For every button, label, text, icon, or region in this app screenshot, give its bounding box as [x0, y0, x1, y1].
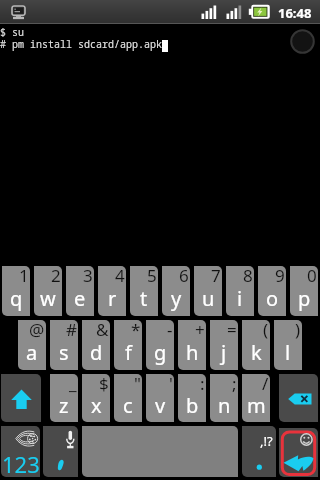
button[interactable]: )	[274, 320, 302, 370]
staticText: z	[59, 392, 69, 419]
button[interactable]: 8	[226, 266, 254, 316]
staticText: *	[131, 320, 141, 341]
staticText: +	[195, 320, 205, 341]
staticText: #	[66, 320, 77, 341]
staticText: u	[202, 285, 215, 312]
button[interactable]: -	[146, 320, 174, 370]
button[interactable]: '	[146, 374, 174, 422]
staticText: h	[186, 339, 199, 366]
button[interactable]: :	[178, 374, 206, 422]
staticText: y	[171, 285, 182, 312]
staticText: v	[155, 392, 166, 419]
button[interactable]: 6	[162, 266, 190, 316]
staticText: $ su	[0, 25, 24, 39]
staticText: m	[247, 392, 266, 419]
staticText: "	[134, 374, 141, 395]
staticText: ,!?	[260, 432, 273, 450]
staticText: -	[167, 320, 173, 341]
button[interactable]: 1	[2, 266, 30, 316]
button[interactable]: +	[178, 320, 206, 370]
staticText: /	[262, 374, 269, 395]
staticText: l	[285, 339, 291, 366]
staticText: k	[251, 339, 262, 366]
staticText: 4	[115, 266, 125, 287]
staticText: :	[200, 374, 205, 395]
staticText: # pm install sdcard/app.apk	[0, 37, 162, 51]
staticText: s	[59, 339, 69, 366]
staticText: a	[26, 339, 38, 366]
button[interactable]: Voice input	[43, 426, 78, 477]
button[interactable]: Space	[82, 426, 238, 477]
staticText: 2	[51, 266, 61, 287]
button[interactable]: =	[210, 320, 238, 370]
staticText: 7	[211, 266, 221, 287]
staticText: c	[123, 392, 133, 419]
staticText: x	[91, 392, 102, 419]
staticText: 6	[179, 266, 189, 287]
button[interactable]: "	[114, 374, 142, 422]
button[interactable]: Backspace	[279, 374, 318, 422]
staticText: o	[266, 285, 279, 312]
button[interactable]: /	[242, 374, 270, 422]
staticText: b	[186, 392, 199, 419]
button[interactable]: Punctuation	[242, 426, 276, 477]
button[interactable]: #	[50, 320, 78, 370]
staticText: r	[108, 285, 117, 312]
staticText: p	[298, 285, 311, 312]
staticText: @	[29, 320, 45, 341]
staticText: n	[218, 392, 231, 419]
button[interactable]: @	[18, 320, 46, 370]
staticText: t	[140, 285, 148, 312]
button[interactable]: *	[114, 320, 142, 370]
staticText: )	[295, 320, 301, 341]
staticText: $	[99, 374, 109, 395]
staticText: i	[237, 285, 243, 312]
staticText: '	[169, 374, 173, 395]
button[interactable]: &	[82, 320, 110, 370]
staticText: =	[227, 320, 237, 341]
staticText: j	[221, 339, 227, 366]
button[interactable]: Enter	[279, 428, 318, 477]
staticText: g	[154, 339, 167, 366]
button[interactable]: 5	[130, 266, 158, 316]
button[interactable]: (	[242, 320, 270, 370]
staticText: _	[69, 374, 77, 395]
staticText: 3	[83, 266, 93, 287]
staticText: w	[40, 285, 56, 312]
button[interactable]: 9	[258, 266, 286, 316]
staticText: 1	[19, 266, 29, 287]
button[interactable]: ;	[210, 374, 238, 422]
staticText: ;	[232, 374, 237, 395]
button[interactable]: Shift	[1, 374, 41, 422]
staticText: f	[125, 339, 132, 366]
button[interactable]: 4	[98, 266, 126, 316]
staticText: 9	[275, 266, 285, 287]
staticText: 16:48	[278, 4, 312, 22]
button[interactable]: 2	[34, 266, 62, 316]
staticText: &	[96, 320, 109, 341]
button[interactable]: 3	[66, 266, 94, 316]
button[interactable]: 0	[290, 266, 318, 316]
staticText: q	[10, 285, 23, 312]
button[interactable]: $	[82, 374, 110, 422]
staticText: 0	[307, 266, 317, 287]
button[interactable]: Symbols 123	[1, 426, 40, 477]
staticText: (	[263, 320, 269, 341]
staticText: e	[74, 285, 86, 312]
staticText: 5	[147, 266, 157, 287]
button[interactable]: _	[50, 374, 78, 422]
staticText: 8	[243, 266, 253, 287]
staticText: d	[90, 339, 103, 366]
button[interactable]: 7	[194, 266, 222, 316]
staticText: 123	[2, 449, 40, 477]
